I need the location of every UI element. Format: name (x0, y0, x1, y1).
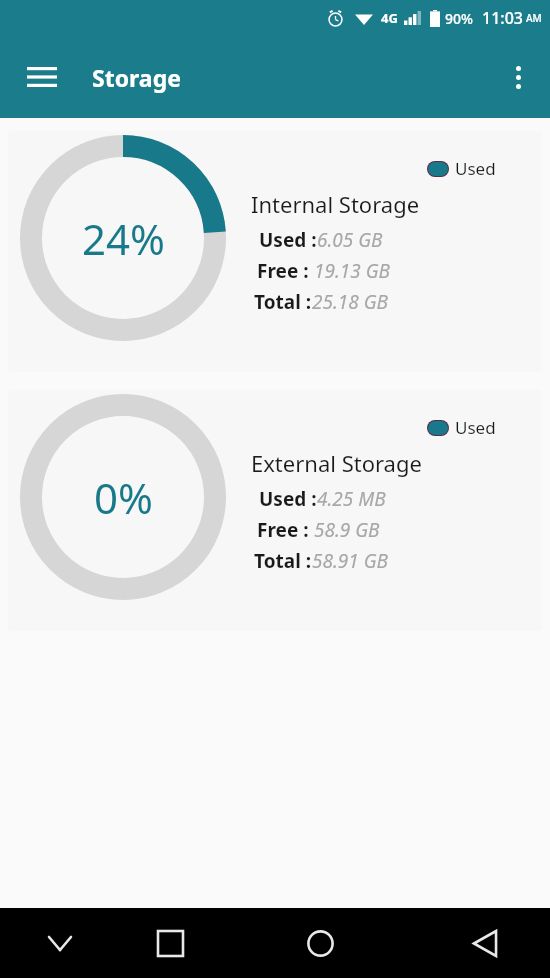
staticText: Total : (254, 289, 312, 315)
staticText: 25.18 GB (312, 289, 388, 315)
button[interactable]: Home (220, 908, 420, 978)
staticText: AM (526, 11, 542, 25)
staticText: Used : (259, 227, 317, 253)
staticText: Free : (257, 517, 314, 543)
staticText: Used : (259, 486, 317, 512)
staticText: External Storage (251, 448, 422, 478)
staticText: Storage (92, 62, 181, 93)
staticText: 90% (445, 9, 473, 28)
staticText: Used (455, 157, 496, 180)
staticText: Internal Storage (251, 189, 420, 219)
staticText: Total : (254, 548, 312, 574)
button[interactable]: Hide keyboard (0, 908, 120, 978)
button[interactable]: Open navigation menu (14, 49, 70, 105)
staticText: 11:03 (482, 7, 523, 29)
staticText: 58.9 GB (314, 517, 380, 543)
button[interactable]: 24% (8, 131, 542, 372)
staticText: 19.13 GB (314, 258, 390, 284)
staticText: 0% (94, 469, 153, 526)
staticText: 24% (82, 210, 165, 267)
button[interactable]: More options (494, 53, 542, 101)
staticText: Used (455, 416, 496, 439)
button[interactable]: Recent apps (120, 908, 220, 978)
staticText: 6.05 GB (317, 227, 383, 253)
staticText: 58.91 GB (312, 548, 388, 574)
staticText: 4G (381, 9, 398, 27)
staticText: 4.25 MB (317, 486, 386, 512)
staticText: Free : (257, 258, 314, 284)
button[interactable]: Back (420, 908, 550, 978)
button[interactable]: 0% (8, 390, 542, 631)
